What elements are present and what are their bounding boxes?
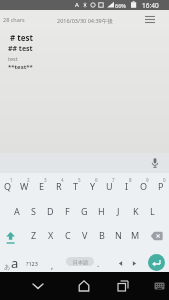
- button[interactable]: M: [127, 223, 144, 247]
- staticText: Q: [4, 180, 12, 192]
- staticText: A: [14, 205, 20, 217]
- staticText: H: [98, 205, 105, 217]
- button[interactable]: [149, 157, 161, 169]
- button[interactable]: N: [110, 223, 127, 247]
- button[interactable]: V: [76, 223, 93, 247]
- staticText: ## test: [8, 44, 33, 54]
- button[interactable]: O: [135, 173, 152, 198]
- staticText: X: [48, 229, 54, 241]
- button[interactable]: P: [152, 173, 169, 198]
- button[interactable]: S: [25, 198, 42, 223]
- staticText: 2016/03/30 04:39午後: [57, 17, 113, 25]
- staticText: F: [65, 205, 70, 217]
- staticText: R: [56, 180, 62, 192]
- button[interactable]: [74, 276, 94, 296]
- button[interactable]: Y: [84, 173, 101, 198]
- staticText: M: [131, 229, 140, 241]
- staticText: 2: [27, 177, 30, 183]
- button[interactable]: F: [59, 198, 76, 223]
- staticText: B: [99, 229, 105, 241]
- button[interactable]: ?123: [22, 247, 42, 272]
- staticText: I: [125, 180, 129, 192]
- button[interactable]: [126, 252, 143, 274]
- button[interactable]: [113, 276, 133, 296]
- staticText: 7: [112, 177, 115, 183]
- staticText: 4: [61, 177, 64, 183]
- button[interactable]: Q: [0, 173, 16, 198]
- staticText: 28 chars: [3, 16, 25, 23]
- staticText: ,: [51, 260, 54, 271]
- staticText: N: [115, 229, 122, 241]
- button[interactable]: [28, 276, 48, 296]
- staticText: K: [133, 205, 139, 217]
- button[interactable]: D: [42, 198, 59, 223]
- button[interactable]: [144, 223, 169, 247]
- staticText: U: [106, 180, 113, 192]
- staticText: S: [31, 205, 36, 217]
- staticText: 0: [163, 177, 166, 183]
- staticText: a: [11, 254, 19, 272]
- button[interactable]: T: [67, 173, 84, 198]
- button[interactable]: [0, 223, 25, 247]
- staticText: 9: [146, 177, 149, 183]
- staticText: D: [47, 205, 54, 217]
- staticText: test: [8, 55, 18, 62]
- staticText: A: [75, 1, 79, 9]
- button[interactable]: [148, 254, 165, 271]
- button[interactable]: C: [59, 223, 76, 247]
- staticText: Y: [90, 180, 96, 192]
- staticText: 66%: [115, 2, 126, 9]
- button[interactable]: E: [33, 173, 50, 198]
- staticText: 1: [10, 177, 13, 183]
- staticText: O: [140, 180, 148, 192]
- button[interactable]: [143, 13, 157, 27]
- staticText: E: [39, 180, 45, 192]
- button[interactable]: Z: [25, 223, 42, 247]
- button[interactable]: B: [93, 223, 110, 247]
- staticText: 16:40: [142, 1, 159, 10]
- button[interactable]: K: [127, 198, 144, 223]
- staticText: C: [65, 229, 71, 241]
- button[interactable]: H: [93, 198, 110, 223]
- staticText: P: [158, 180, 164, 192]
- button[interactable]: U: [101, 173, 118, 198]
- staticText: 6: [95, 177, 98, 183]
- staticText: J: [117, 205, 120, 217]
- staticText: ?123: [26, 260, 38, 267]
- button[interactable]: I: [118, 173, 135, 198]
- staticText: 日本語: [73, 259, 88, 265]
- staticText: T: [73, 180, 79, 192]
- staticText: あ: [4, 263, 11, 271]
- staticText: G: [81, 205, 88, 217]
- button[interactable]: G: [76, 198, 93, 223]
- button[interactable]: あ: [0, 247, 22, 272]
- staticText: **test**: [8, 63, 33, 71]
- staticText: 5: [78, 177, 81, 183]
- staticText: 8: [129, 177, 132, 183]
- staticText: Z: [31, 229, 37, 241]
- button[interactable]: L: [144, 198, 161, 223]
- button[interactable]: J: [110, 198, 127, 223]
- staticText: # test: [10, 32, 33, 43]
- button[interactable]: X: [42, 223, 59, 247]
- staticText: L: [150, 205, 155, 217]
- button[interactable]: A: [8, 198, 25, 223]
- staticText: 3: [44, 177, 47, 183]
- button[interactable]: [151, 278, 167, 294]
- button[interactable]: R: [50, 173, 67, 198]
- button[interactable]: [112, 252, 129, 274]
- staticText: W: [20, 180, 29, 192]
- staticText: .: [97, 258, 100, 269]
- button[interactable]: 日本語: [57, 247, 102, 272]
- button[interactable]: W: [16, 173, 33, 198]
- staticText: V: [82, 229, 88, 241]
